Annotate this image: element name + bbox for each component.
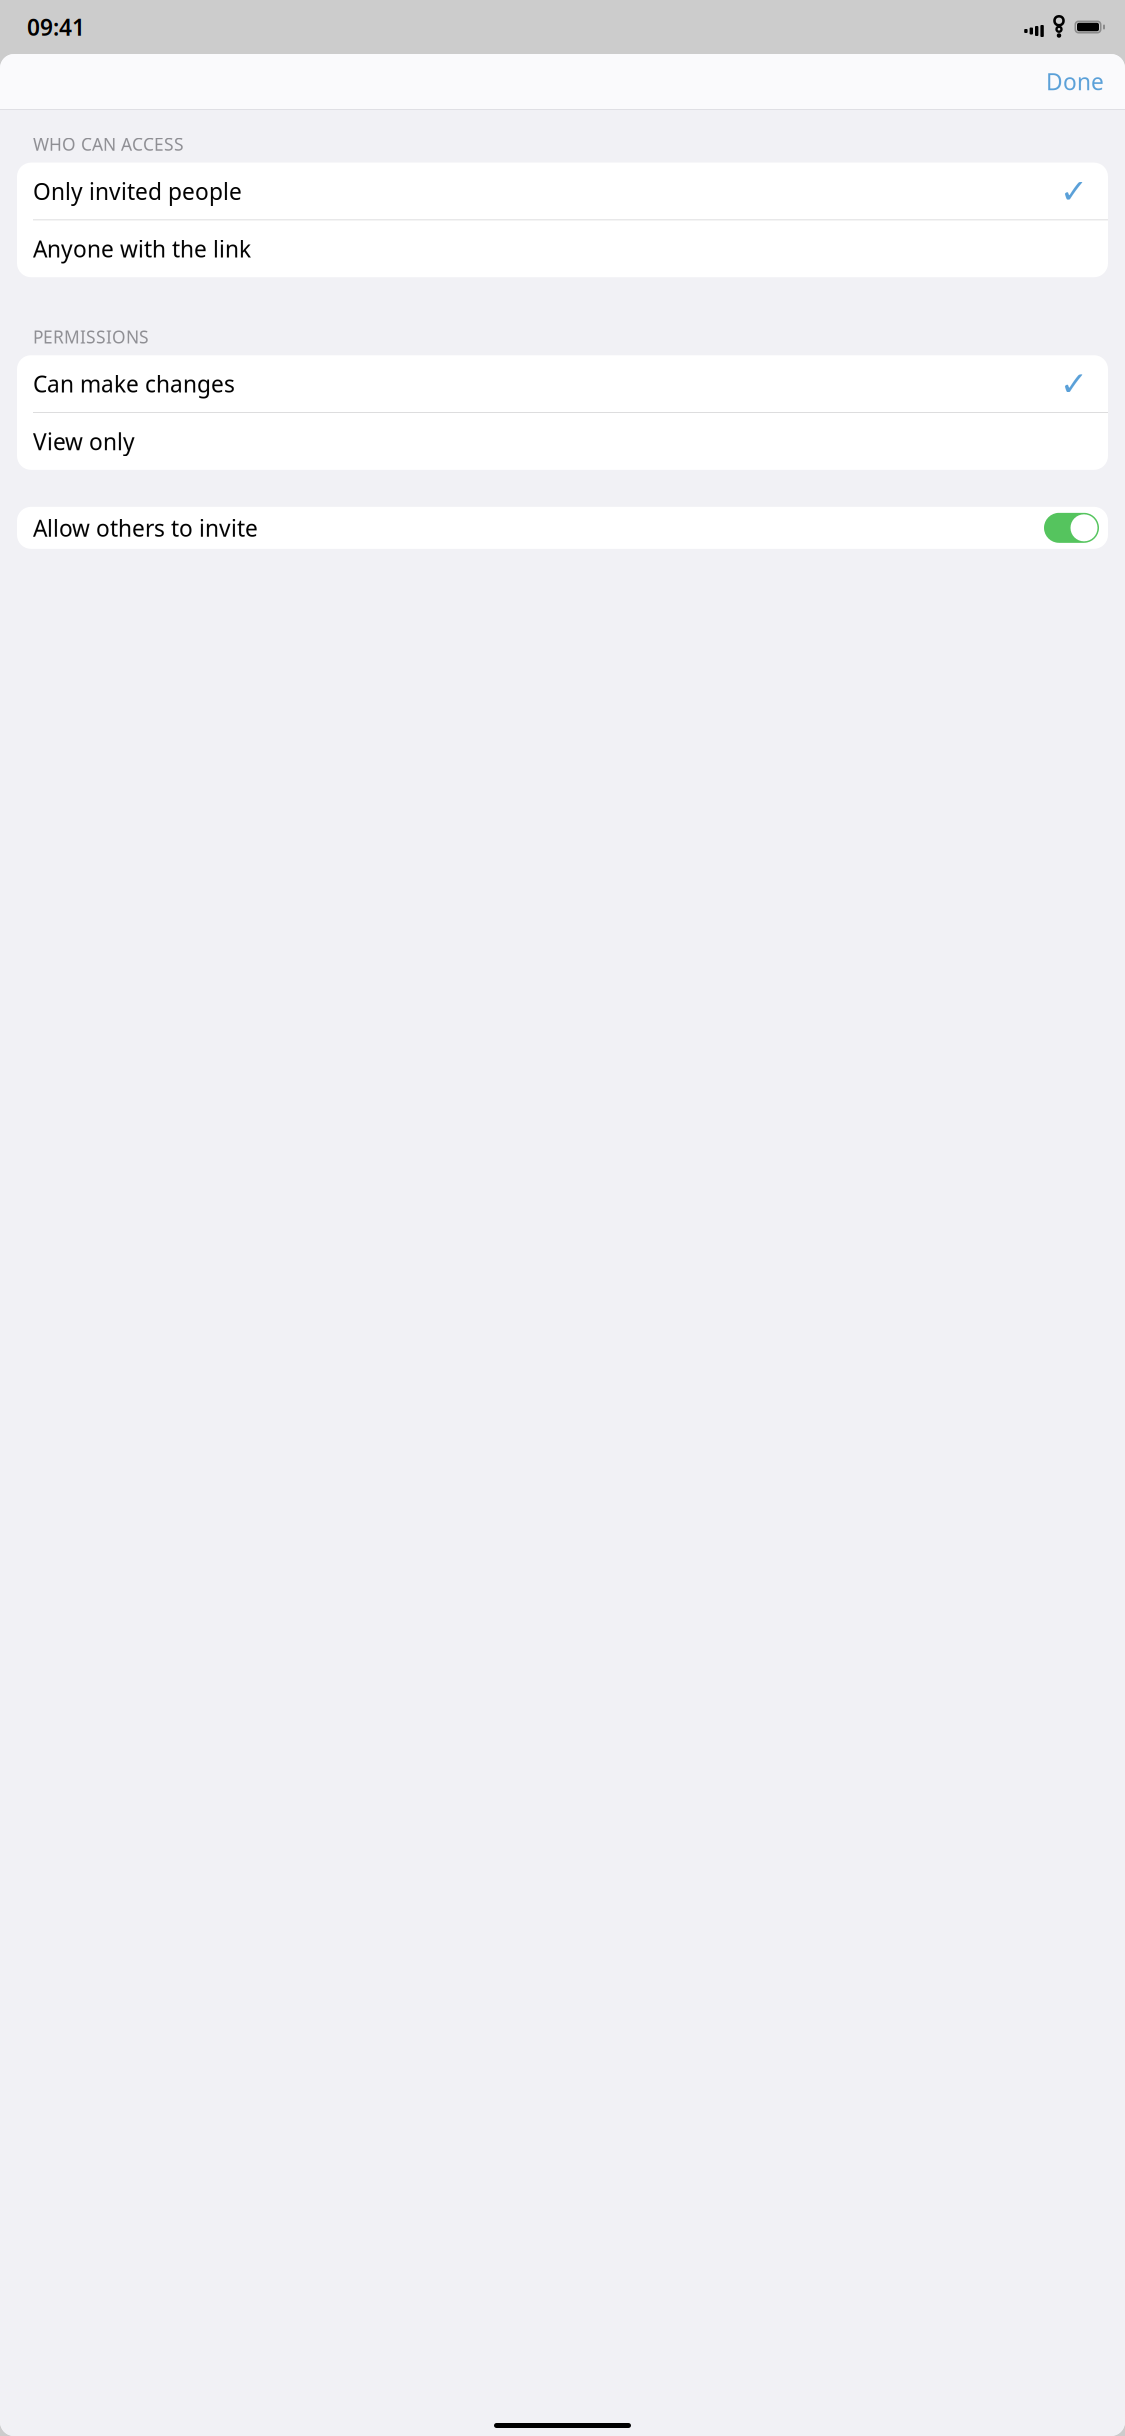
button[interactable]: Allow others to invite <box>17 507 1108 549</box>
staticText: View only <box>33 426 135 456</box>
staticText: Anyone with the link <box>33 234 251 264</box>
button[interactable]: Can make changes <box>17 355 1108 412</box>
button[interactable]: Anyone with the link <box>17 220 1108 277</box>
staticText: Done <box>1046 66 1104 96</box>
button[interactable]: Only invited people <box>17 163 1108 220</box>
staticText: PERMISSIONS <box>33 325 149 348</box>
button[interactable]: Done <box>1030 54 1120 108</box>
staticText: Allow others to invite <box>33 513 258 543</box>
staticText: Only invited people <box>33 176 242 206</box>
staticText: Can make changes <box>33 369 235 399</box>
staticText: WHO CAN ACCESS <box>33 133 184 156</box>
button[interactable]: View only <box>17 413 1108 470</box>
staticText: ✓ <box>1060 365 1088 403</box>
staticText: 09:41 <box>27 12 85 42</box>
staticText: ✓ <box>1060 172 1088 210</box>
